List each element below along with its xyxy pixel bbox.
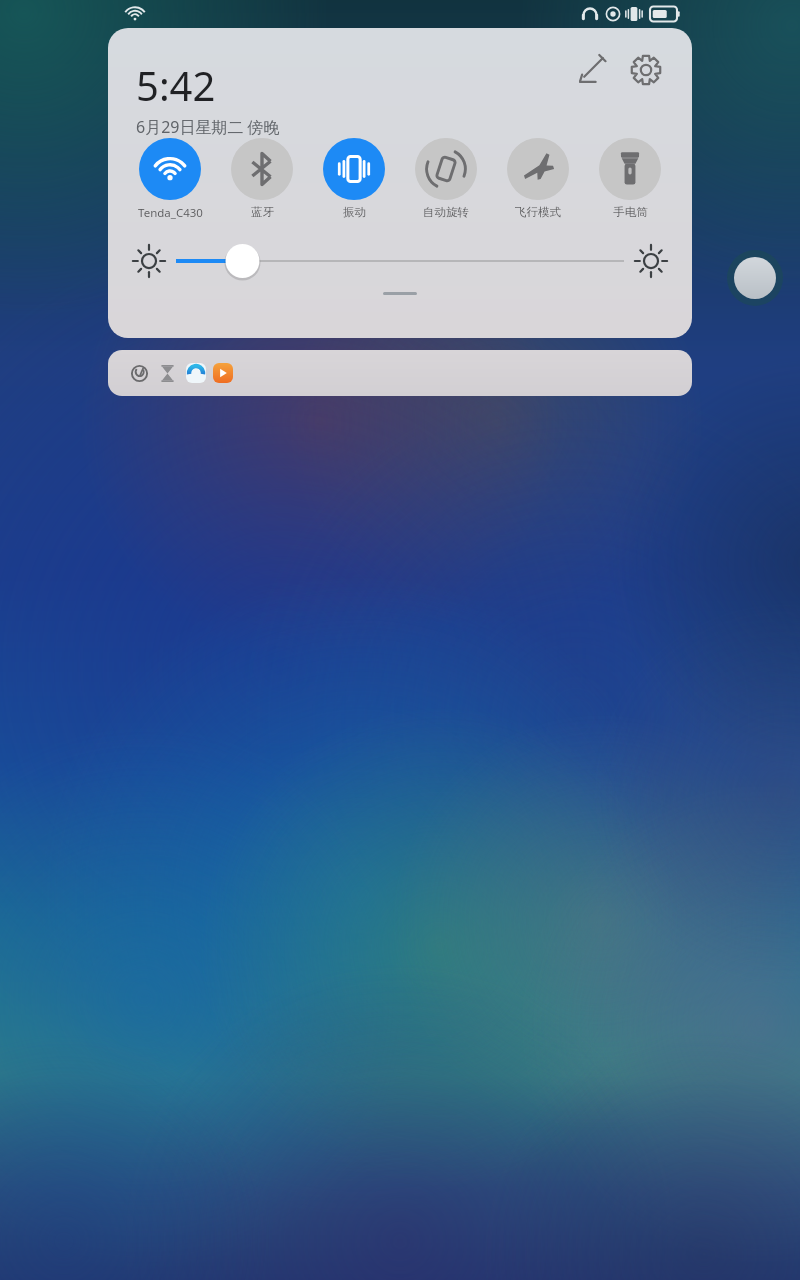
- button[interactable]: 蓝牙: [218, 138, 306, 219]
- button[interactable]: Edit: [568, 46, 616, 94]
- button[interactable]: [108, 350, 692, 396]
- staticText: 5:42: [136, 58, 216, 112]
- staticText: 飞行模式: [515, 205, 561, 219]
- button[interactable]: [176, 241, 624, 281]
- button[interactable]: 振动: [310, 138, 398, 219]
- button[interactable]: 手电筒: [586, 138, 674, 219]
- staticText: 6月29日星期二 傍晚: [136, 116, 280, 138]
- button[interactable]: Assistive touch: [727, 250, 783, 306]
- button[interactable]: Settings: [622, 46, 670, 94]
- staticText: 自动旋转: [423, 205, 469, 219]
- staticText: 蓝牙: [251, 205, 274, 219]
- staticText: 振动: [343, 205, 366, 219]
- button[interactable]: 飞行模式: [494, 138, 582, 219]
- staticText: 手电筒: [613, 205, 648, 219]
- button[interactable]: 自动旋转: [402, 138, 490, 219]
- staticText: Tenda_C430: [138, 205, 203, 221]
- button[interactable]: Tenda_C430: [126, 138, 214, 221]
